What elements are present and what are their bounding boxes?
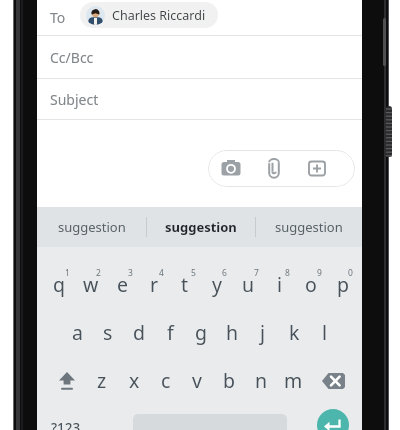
staticText: suggestion <box>275 218 343 236</box>
staticText: a <box>72 319 83 346</box>
button[interactable]: suggestion <box>256 207 362 247</box>
staticText: v <box>192 367 202 394</box>
staticText: b <box>223 367 235 394</box>
button[interactable]: s <box>93 310 123 354</box>
staticText: Cc/Bcc <box>50 48 94 67</box>
button[interactable]: x <box>119 358 149 402</box>
button[interactable]: v <box>182 358 212 402</box>
button[interactable]: r <box>139 262 169 306</box>
button[interactable]: h <box>217 310 247 354</box>
button[interactable]: t <box>170 262 200 306</box>
staticText: 4 <box>159 267 164 279</box>
button[interactable]: i <box>265 262 295 306</box>
button[interactable]: To <box>50 0 90 34</box>
staticText: Subject <box>50 90 99 109</box>
button[interactable]: c <box>151 358 181 402</box>
button[interactable]: e <box>107 262 137 306</box>
button[interactable]: o <box>296 262 326 306</box>
staticText: suggestion <box>58 218 126 236</box>
button[interactable]: k <box>279 310 309 354</box>
staticText: y <box>212 271 222 298</box>
button[interactable]: a <box>62 310 92 354</box>
button[interactable] <box>37 360 85 400</box>
staticText: w <box>83 271 99 298</box>
staticText: x <box>129 367 140 394</box>
button[interactable]: z <box>87 358 117 402</box>
staticText: c <box>161 367 171 394</box>
staticText: u <box>242 271 255 298</box>
button[interactable]: y <box>202 262 232 306</box>
staticText: 8 <box>285 267 290 279</box>
button[interactable]: f <box>155 310 185 354</box>
button[interactable]: u <box>233 262 263 306</box>
button[interactable]: Subject <box>50 79 170 119</box>
button[interactable] <box>314 360 362 400</box>
button[interactable]: d <box>124 310 154 354</box>
staticText: o <box>305 271 317 298</box>
button[interactable]: q <box>44 262 74 306</box>
staticText: To <box>50 8 66 27</box>
staticText: p <box>337 271 349 298</box>
button[interactable]: n <box>246 358 276 402</box>
staticText: 3 <box>128 267 133 279</box>
staticText: suggestion <box>165 218 237 236</box>
staticText: s <box>103 319 113 346</box>
staticText: 6 <box>222 267 227 279</box>
staticText: Charles Riccardi <box>112 7 206 24</box>
staticText: 1 <box>65 267 70 279</box>
staticText: d <box>133 319 145 346</box>
button[interactable]: suggestion <box>147 207 255 247</box>
staticText: t <box>181 271 189 298</box>
button[interactable]: w <box>76 262 106 306</box>
staticText: e <box>117 271 128 298</box>
button[interactable]: Cc/Bcc <box>50 36 170 78</box>
staticText: 0 <box>348 267 353 279</box>
button[interactable]: ?123 <box>44 417 88 430</box>
staticText: z <box>97 367 107 394</box>
staticText: r <box>150 271 159 298</box>
staticText: 9 <box>317 267 322 279</box>
staticText: 5 <box>191 267 196 279</box>
staticText: q <box>53 271 65 298</box>
button[interactable]: p <box>328 262 358 306</box>
button[interactable] <box>208 150 355 187</box>
staticText: h <box>226 319 239 346</box>
button[interactable]: g <box>186 310 216 354</box>
button[interactable] <box>317 409 349 430</box>
button[interactable]: j <box>248 310 278 354</box>
button[interactable]: Charles Riccardi <box>80 2 218 28</box>
staticText: f <box>167 319 174 346</box>
staticText: 7 <box>254 267 259 279</box>
button[interactable]: m <box>278 358 308 402</box>
staticText: n <box>255 367 268 394</box>
staticText: l <box>322 319 328 346</box>
staticText: j <box>260 319 266 346</box>
staticText: g <box>195 319 207 346</box>
staticText: m <box>284 367 303 394</box>
staticText: i <box>277 271 283 298</box>
staticText: 2 <box>96 267 101 279</box>
button[interactable]: suggestion <box>37 207 146 247</box>
button[interactable]: b <box>214 358 244 402</box>
staticText: k <box>289 319 300 346</box>
staticText: ?123 <box>51 419 81 430</box>
button[interactable]: l <box>310 310 340 354</box>
